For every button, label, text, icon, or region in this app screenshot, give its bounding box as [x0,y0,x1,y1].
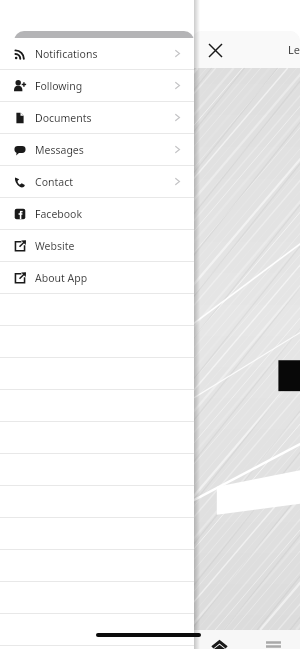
button[interactable]: About App [0,262,194,294]
staticText: Following [35,79,83,93]
staticText: Messages [35,143,84,157]
staticText: Facebook [35,207,83,221]
button[interactable]: Documents [0,102,194,134]
button[interactable]: Divisions [246,630,300,649]
staticText: Documents [35,111,92,125]
staticText: Contact [35,175,73,189]
staticText: Website [35,239,75,253]
button[interactable]: Facebook [0,198,194,230]
button[interactable]: Contact [0,166,194,198]
button[interactable]: Following [0,70,194,102]
button[interactable]: Notifications [0,38,194,70]
staticText: Le [288,42,300,57]
button[interactable]: Close [204,39,226,61]
button[interactable]: Messages [0,134,194,166]
button[interactable]: Website [0,230,194,262]
staticText: Notifications [35,47,98,61]
button[interactable]: Home [192,630,246,649]
staticText: About App [35,271,88,285]
